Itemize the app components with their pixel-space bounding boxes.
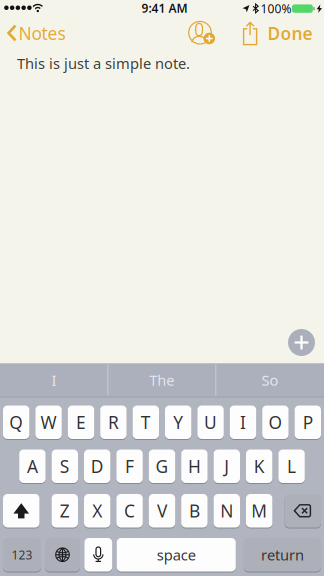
staticText: return [261,545,304,564]
staticText: E [76,411,86,434]
staticText: P [303,411,313,434]
button[interactable]: So [217,363,323,396]
staticText: X [92,499,102,522]
staticText: Z [60,499,70,522]
button[interactable]: A [19,449,46,483]
button[interactable]: Shift [3,493,39,528]
staticText: space [157,545,196,564]
button[interactable]: R [100,405,127,439]
staticText: So [261,370,278,390]
button[interactable]: L [278,449,305,483]
button[interactable]: T [133,405,159,439]
staticText: F [125,455,134,478]
staticText: C [124,499,135,522]
button[interactable]: V [149,493,175,528]
staticText: 9:41 AM [141,0,187,16]
staticText: Y [173,411,183,434]
staticText: N [220,499,233,522]
button[interactable]: space [117,537,236,572]
button[interactable]: Notes [0,18,70,48]
button[interactable]: O [262,405,289,439]
staticText: V [157,499,167,522]
button[interactable]: X [84,493,110,528]
staticText: 100% [260,1,291,16]
button[interactable]: F [116,449,143,483]
button[interactable]: Y [165,405,191,439]
button[interactable]: Add people to note [186,19,216,49]
staticText: D [91,455,104,478]
staticText: M [251,499,267,522]
button[interactable]: Add attachment [288,329,315,356]
button[interactable]: E [68,405,94,439]
staticText: This is just a simple note. [17,53,190,73]
staticText: R [108,411,119,434]
button[interactable]: H [181,449,208,483]
staticText: G [155,455,168,478]
staticText: J [224,455,229,478]
button[interactable]: W [35,405,62,439]
staticText: L [287,455,296,478]
staticText: I [240,411,246,434]
staticText: T [141,411,151,434]
button[interactable]: K [246,449,272,483]
button[interactable]: Q [3,405,29,439]
button[interactable]: P [295,405,321,439]
button[interactable]: I [1,363,107,396]
button[interactable]: U [197,405,224,439]
button[interactable]: 123 [3,537,41,572]
button[interactable]: The [109,363,215,396]
staticText: 123 [11,547,32,563]
staticText: Notes [18,22,65,45]
button[interactable]: N [214,493,240,528]
button[interactable]: I [230,405,256,439]
staticText: Done [267,22,312,45]
button[interactable]: Done [266,19,314,47]
button[interactable]: J [214,449,240,483]
button[interactable]: C [116,493,143,528]
button[interactable]: Next keyboard [45,537,80,572]
staticText: Q [9,411,23,434]
button[interactable]: return [244,537,321,572]
button[interactable]: Dictate [84,537,112,572]
staticText: U [204,411,217,434]
button[interactable]: Share [237,18,263,48]
staticText: The [149,370,174,390]
staticText: O [268,411,282,434]
button[interactable]: D [84,449,110,483]
staticText: S [60,455,70,478]
button[interactable]: Delete [284,493,321,528]
button[interactable]: S [52,449,78,483]
button[interactable]: B [181,493,208,528]
staticText: H [188,455,201,478]
button[interactable]: M [246,493,272,528]
staticText: I [51,370,56,390]
staticText: W [41,411,57,434]
staticText: B [189,499,200,522]
staticText: A [27,455,38,478]
button[interactable]: G [149,449,175,483]
button[interactable]: Z [52,493,78,528]
staticText: K [254,455,265,478]
